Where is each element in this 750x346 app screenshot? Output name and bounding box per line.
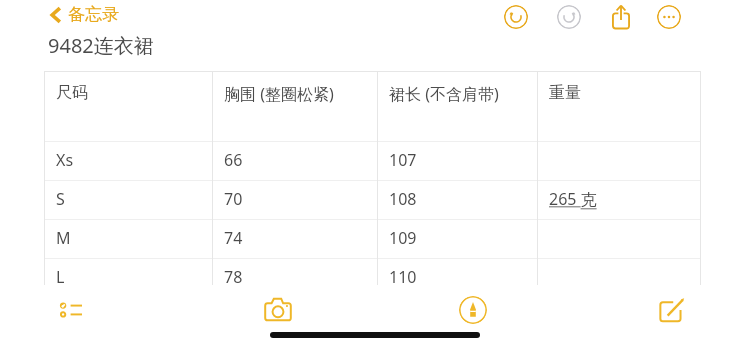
button[interactable]: Xs [56,149,74,171]
button[interactable]: M [56,227,71,249]
staticText: 265 克 [549,188,597,210]
button[interactable]: 265 克 [549,188,597,210]
staticText: 重量 [549,83,581,103]
button[interactable]: 66 [224,149,243,171]
button[interactable]: 裙长 (不含肩带) [389,83,529,105]
staticText: 尺码 [56,83,88,103]
button[interactable]: Markup [459,296,487,324]
button[interactable]: 110 [389,266,417,288]
staticText: 66 [224,149,243,171]
button[interactable]: 尺码 [56,83,204,103]
button[interactable]: 70 [224,188,243,210]
staticText: L [56,266,65,288]
staticText: 78 [224,266,243,288]
button[interactable]: Checklist [58,297,88,323]
button[interactable]: S [56,188,65,210]
button[interactable]: 109 [389,227,417,249]
button[interactable]: 108 [389,188,417,210]
staticText: 备忘录 [68,4,119,25]
staticText: 70 [224,188,243,210]
staticText: 109 [389,227,417,249]
staticText: 裙长 (不含肩带) [389,83,499,105]
button[interactable]: Redo [557,5,581,29]
staticText: 74 [224,227,243,249]
button[interactable]: Camera [262,296,294,323]
button[interactable]: 重量 [549,83,693,103]
staticText: 110 [389,266,417,288]
button[interactable]: 107 [389,149,417,171]
staticText: Xs [56,149,74,171]
button[interactable]: 胸围 (整圈松紧) [224,83,369,105]
button[interactable]: 备忘录 [48,2,121,27]
staticText: 胸围 (整圈松紧) [224,83,334,105]
staticText: S [56,188,65,210]
button[interactable]: Undo [504,5,528,29]
button[interactable]: 78 [224,266,243,288]
button[interactable]: More options [657,5,681,29]
button[interactable]: L [56,266,65,288]
staticText: 107 [389,149,417,171]
button[interactable]: Share [608,4,634,30]
button[interactable]: 74 [224,227,243,249]
staticText: M [56,227,71,249]
button[interactable]: New note [657,296,685,324]
staticText: 9482连衣裙 [48,32,154,59]
staticText: 108 [389,188,417,210]
